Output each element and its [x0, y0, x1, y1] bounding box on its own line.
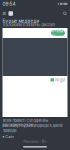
- staticText: Реклама · 18+: [23, 140, 46, 144]
- staticText: imgur: [55, 77, 66, 82]
- staticText: Бурые медведи: [2, 18, 39, 24]
- button[interactable]: Search: [61, 9, 69, 18]
- staticText: Сайт: [5, 135, 14, 139]
- staticText: Открыть: [51, 29, 64, 37]
- staticText: Выложили в полночь: рассвет отменяется: [2, 22, 55, 32]
- staticText: как живут бурые медведи в дикой: [2, 123, 62, 128]
- button[interactable]: Сайт: [2, 135, 14, 139]
- staticText: Всем привет! Сегодня мы расскажем о том,: [2, 118, 48, 127]
- button[interactable]: Menu: [1, 9, 7, 18]
- staticText: 09:54: [2, 1, 15, 7]
- button[interactable]: Открыть: [51, 30, 65, 36]
- staticText: природе: [2, 128, 16, 133]
- button[interactable]: Channel: [7, 9, 14, 18]
